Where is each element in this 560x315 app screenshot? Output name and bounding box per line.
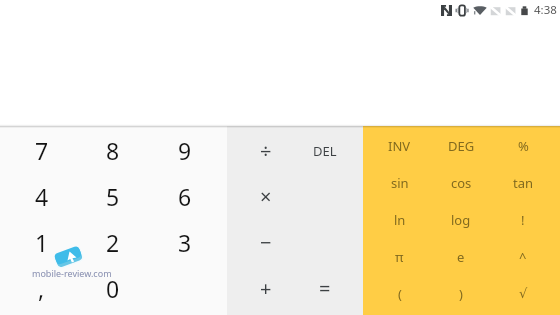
staticText: −	[260, 229, 272, 256]
other: NFC enabled	[441, 5, 452, 16]
staticText: 6	[178, 181, 192, 212]
button[interactable]: sin	[369, 164, 430, 201]
staticText: π	[395, 248, 404, 266]
button[interactable]: (	[369, 275, 430, 312]
button[interactable]: cos	[430, 164, 492, 201]
button[interactable]: √	[492, 275, 554, 312]
staticText: +	[260, 275, 272, 302]
staticText: ,	[38, 273, 45, 304]
staticText: 4	[35, 181, 49, 212]
staticText: 1	[35, 227, 49, 258]
staticText: 8	[106, 135, 120, 166]
button[interactable]: 4	[6, 173, 77, 219]
button[interactable]: !	[492, 201, 554, 238]
staticText: 9	[178, 135, 192, 166]
staticText: mobile-review.com	[32, 267, 112, 279]
staticText: =	[319, 275, 331, 302]
staticText: cos	[451, 174, 472, 192]
button[interactable]: 7	[6, 128, 77, 173]
button[interactable]: %	[492, 128, 554, 164]
button[interactable]: Multiply	[236, 173, 295, 219]
staticText: sin	[391, 174, 409, 192]
staticText: log	[451, 211, 471, 229]
button[interactable]: e	[430, 238, 492, 275]
button[interactable]: 2	[77, 219, 149, 265]
staticText: 0	[106, 273, 120, 304]
other: Ringer set to vibrate	[455, 5, 469, 16]
button[interactable]: ,	[6, 265, 77, 311]
other: No SIM 2 signal	[505, 5, 516, 16]
button[interactable]: 5	[77, 173, 149, 219]
button[interactable]: tan	[492, 164, 554, 201]
button[interactable]: ln	[369, 201, 430, 238]
button[interactable]: DEG	[430, 128, 492, 164]
button[interactable]: ^	[492, 238, 554, 275]
button[interactable]: 0	[77, 265, 149, 311]
button[interactable]: 8	[77, 128, 149, 173]
staticText: DEG	[448, 137, 475, 155]
staticText: )	[459, 285, 463, 303]
staticText: 3	[178, 227, 192, 258]
button[interactable]: INV	[369, 128, 430, 164]
staticText: ln	[394, 211, 406, 229]
staticText: INV	[388, 137, 411, 155]
button[interactable]: =	[295, 265, 354, 311]
staticText: !	[521, 211, 525, 229]
staticText: 4:38	[534, 2, 557, 18]
staticText: ×	[260, 183, 272, 210]
button[interactable]: Add	[236, 265, 295, 311]
button[interactable]: 1	[6, 219, 77, 265]
staticText: e	[457, 248, 465, 266]
staticText: ^	[519, 248, 527, 266]
staticText: 5	[106, 181, 120, 212]
other: No SIM 1 signal	[490, 5, 501, 16]
button[interactable]: π	[369, 238, 430, 275]
button[interactable]: DEL	[295, 128, 354, 173]
staticText: %	[518, 137, 529, 155]
button[interactable]: 9	[149, 128, 221, 173]
button[interactable]: )	[430, 275, 492, 312]
other: Battery full	[521, 5, 528, 16]
button[interactable]: 6	[149, 173, 221, 219]
staticText: 2	[106, 227, 120, 258]
button[interactable]: 3	[149, 219, 221, 265]
other: Wi-Fi connected	[473, 5, 487, 16]
staticText: ÷	[260, 137, 272, 164]
staticText: 7	[35, 135, 49, 166]
staticText: √	[519, 286, 528, 301]
button[interactable]: log	[430, 201, 492, 238]
staticText: tan	[513, 174, 534, 192]
staticText: DEL	[313, 142, 337, 160]
button[interactable]: Subtract	[236, 219, 295, 265]
button[interactable]: Divide	[236, 128, 295, 173]
staticText: (	[398, 285, 402, 303]
